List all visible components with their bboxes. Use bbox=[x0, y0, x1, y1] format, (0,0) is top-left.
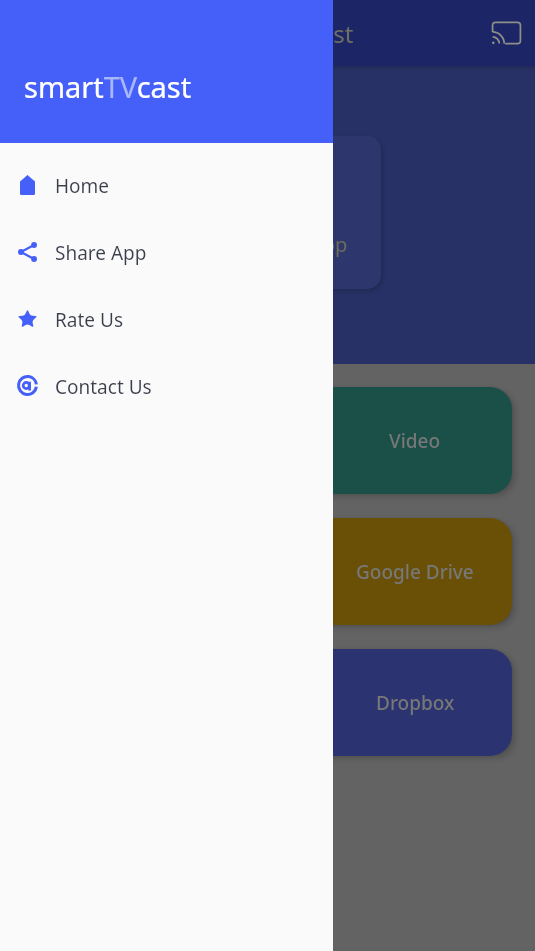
staticText: Rate Us bbox=[55, 307, 123, 333]
button[interactable]: Rate Us bbox=[0, 287, 333, 354]
staticText: Dropbox bbox=[376, 690, 455, 716]
button[interactable]: How to use the app bbox=[20, 136, 381, 289]
staticText: smartTVcast bbox=[24, 67, 192, 106]
staticText: How to use the app bbox=[165, 231, 348, 258]
staticText: Share App bbox=[55, 240, 147, 266]
button[interactable]: Google Drive bbox=[0, 518, 512, 625]
button[interactable]: Cast bbox=[484, 11, 528, 55]
button[interactable]: Share App bbox=[0, 220, 333, 287]
staticText: Video bbox=[389, 428, 441, 454]
staticText: Home bbox=[55, 173, 110, 199]
button[interactable]: Video bbox=[0, 387, 512, 494]
button[interactable]: Home bbox=[0, 153, 333, 220]
staticText: Contact Us bbox=[55, 374, 152, 400]
button[interactable]: Dropbox bbox=[0, 649, 512, 756]
staticText: Google Drive bbox=[356, 559, 474, 585]
staticText: smartTVcast bbox=[215, 17, 354, 50]
button[interactable]: Contact Us bbox=[0, 354, 333, 421]
